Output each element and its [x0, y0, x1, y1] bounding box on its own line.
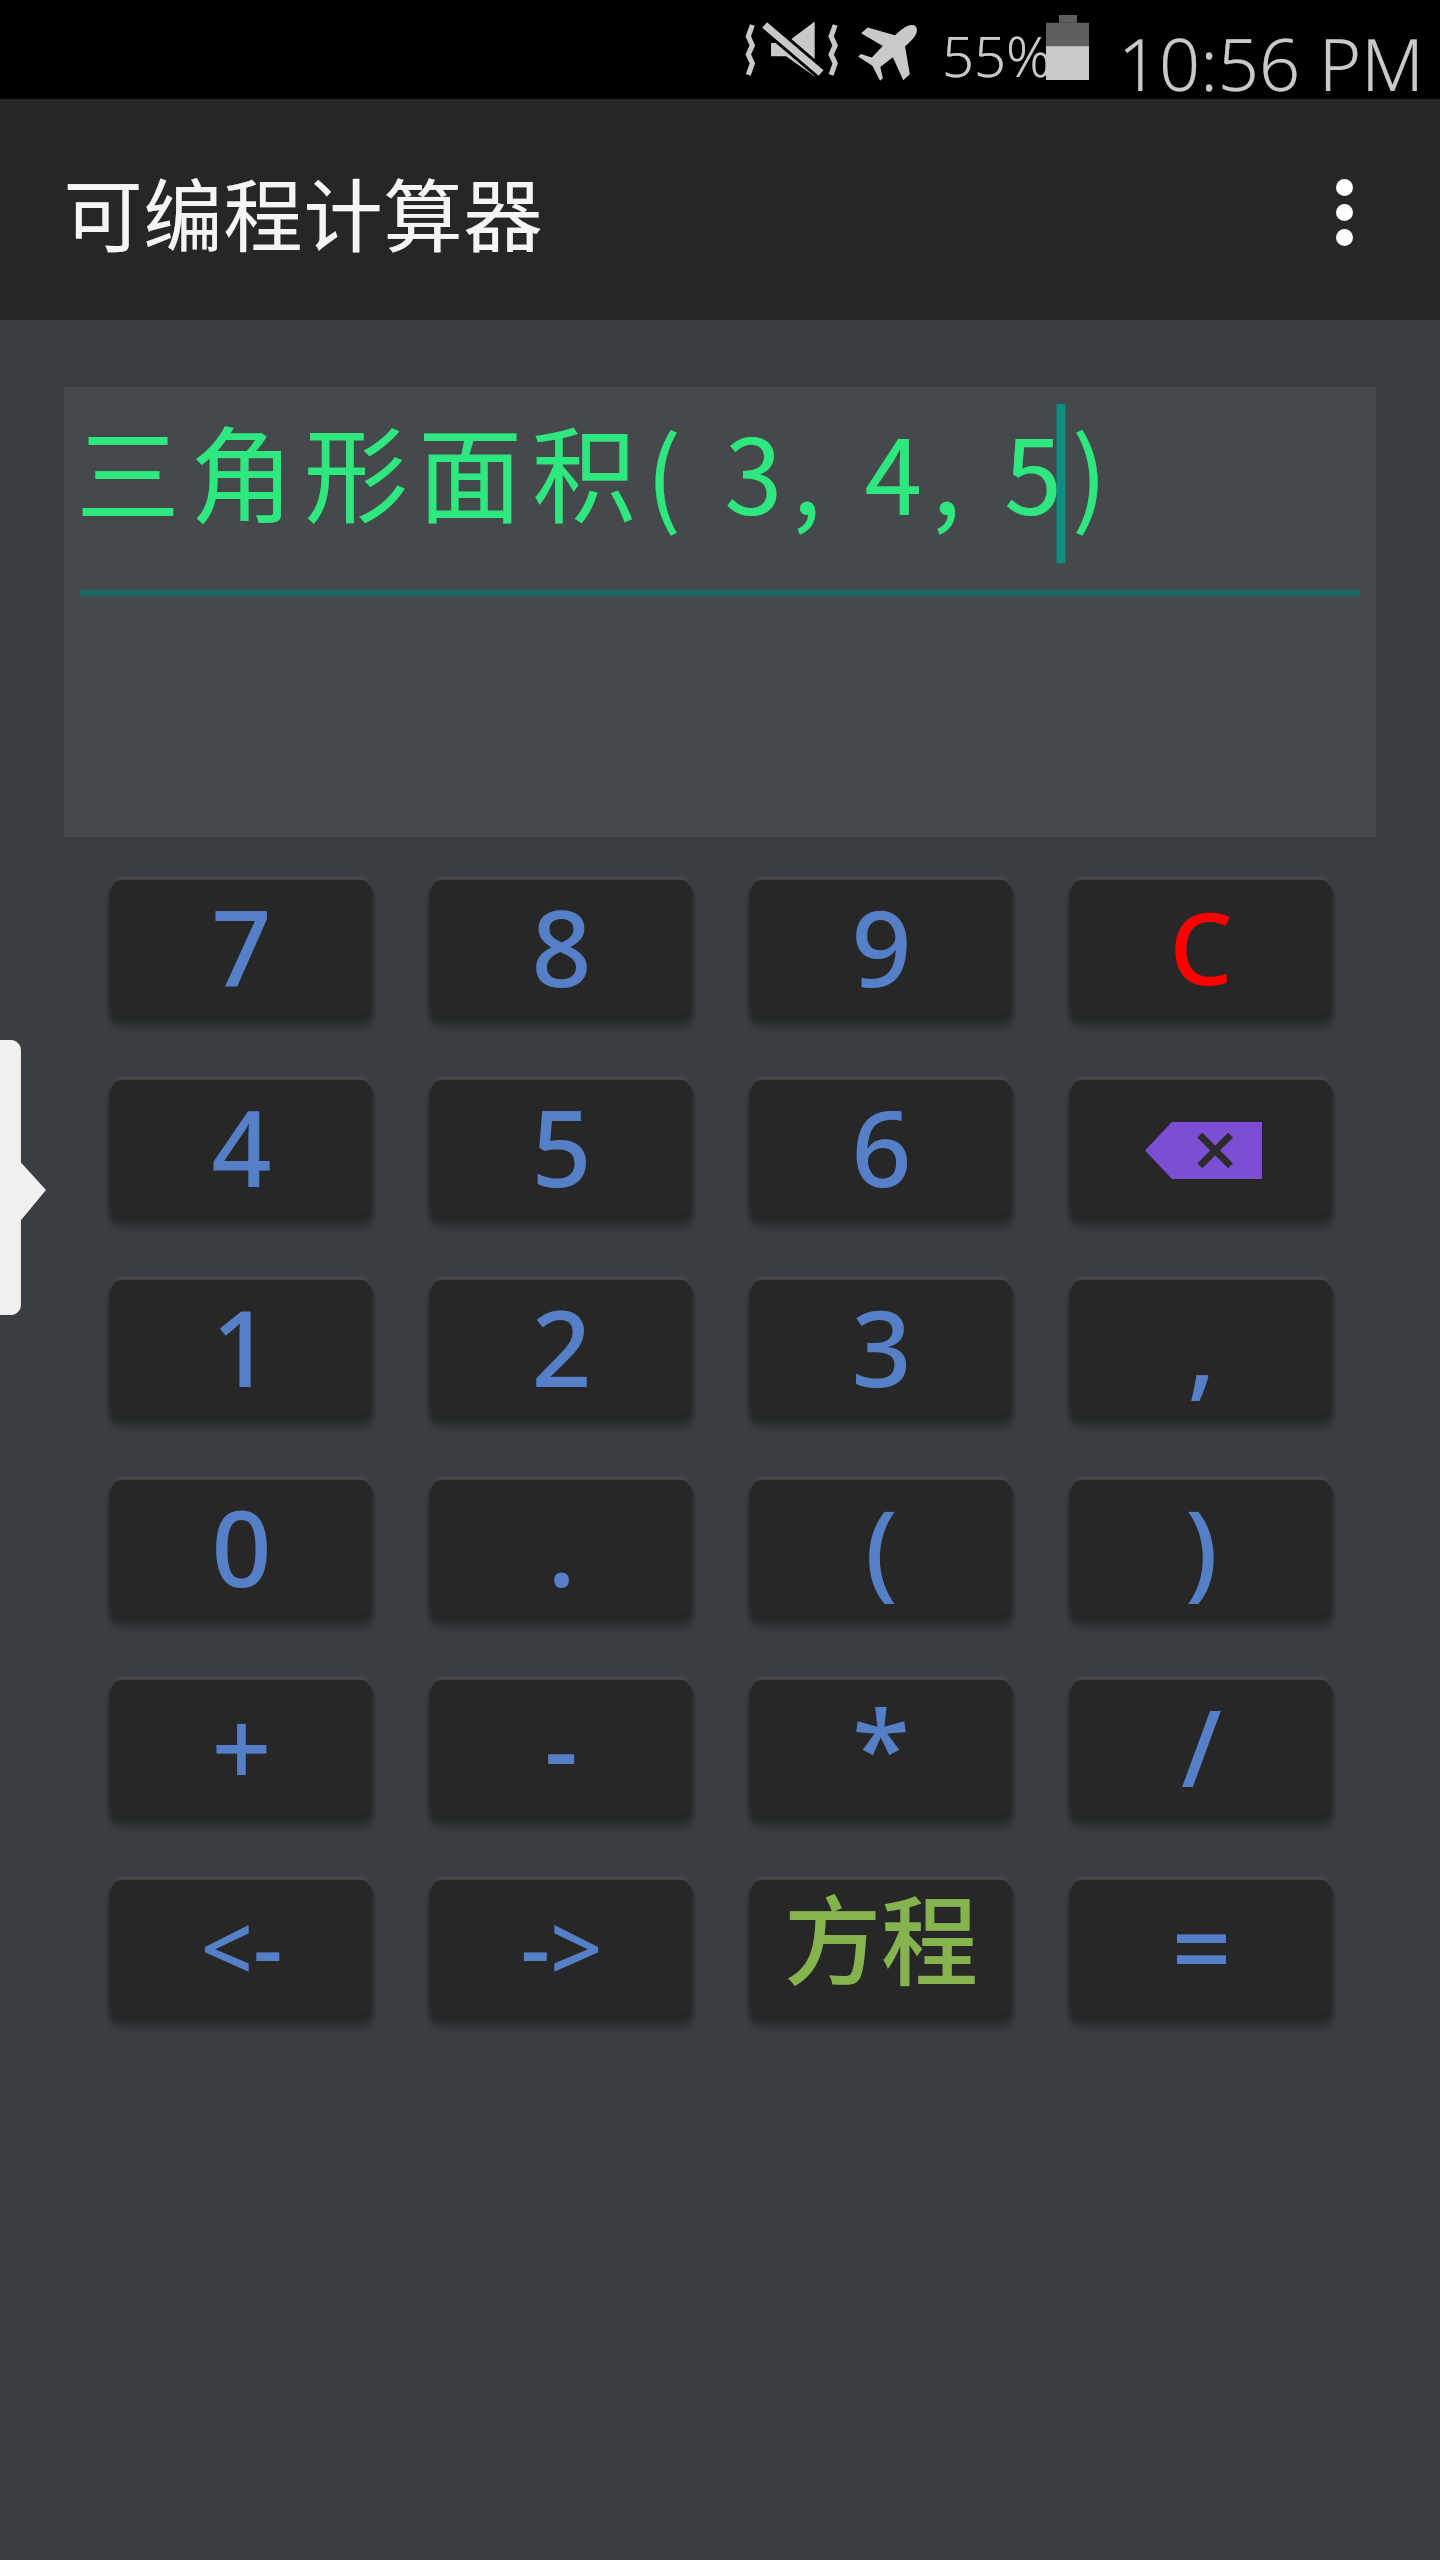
- staticText: 7: [211, 875, 272, 1018]
- staticText: <-: [200, 1884, 283, 2009]
- button[interactable]: 9: [740, 870, 1022, 1030]
- staticText: +: [211, 1675, 272, 1818]
- staticText: ): [1185, 1475, 1218, 1618]
- other: Delete: [1145, 1122, 1262, 1179]
- staticText: 三角形面积( 3, 4, 5): [76, 394, 1118, 545]
- button[interactable]: <-: [100, 1870, 382, 2030]
- staticText: 55%: [942, 17, 1052, 93]
- button[interactable]: /: [1060, 1670, 1342, 1830]
- staticText: 6: [851, 1075, 912, 1218]
- button[interactable]: C: [1060, 870, 1342, 1030]
- button[interactable]: -: [420, 1670, 702, 1830]
- button[interactable]: 8: [420, 870, 702, 1030]
- button[interactable]: =: [1060, 1870, 1342, 2030]
- button[interactable]: 方程: [740, 1870, 1022, 2030]
- staticText: *: [852, 1675, 910, 1818]
- staticText: /: [1181, 1675, 1222, 1818]
- staticText: 8: [531, 875, 592, 1018]
- button[interactable]: 3: [740, 1270, 1022, 1430]
- staticText: ->: [520, 1884, 603, 2009]
- button[interactable]: +: [100, 1670, 382, 1830]
- staticText: 方程: [784, 1864, 978, 2004]
- staticText: 0: [211, 1475, 272, 1618]
- button[interactable]: .: [420, 1470, 702, 1630]
- staticText: 9: [851, 875, 912, 1018]
- button[interactable]: ): [1060, 1470, 1342, 1630]
- button[interactable]: Open drawer: [0, 1040, 46, 1315]
- staticText: (: [865, 1475, 898, 1618]
- button[interactable]: Delete: [1060, 1070, 1342, 1230]
- staticText: -: [544, 1675, 578, 1818]
- button[interactable]: 三角形面积( 3, 4, 5): [64, 387, 1376, 837]
- button[interactable]: (: [740, 1470, 1022, 1630]
- staticText: 1: [211, 1275, 272, 1418]
- button[interactable]: More options: [1284, 150, 1404, 270]
- staticText: 可编程计算器: [63, 154, 543, 268]
- staticText: ,: [1187, 1275, 1216, 1418]
- button[interactable]: ->: [420, 1870, 702, 2030]
- button[interactable]: 0: [100, 1470, 382, 1630]
- staticText: 5: [531, 1075, 592, 1218]
- staticText: =: [1171, 1875, 1232, 2018]
- staticText: C: [1169, 878, 1233, 1014]
- button[interactable]: 1: [100, 1270, 382, 1430]
- staticText: 2: [531, 1275, 592, 1418]
- staticText: 4: [211, 1075, 272, 1218]
- button[interactable]: 2: [420, 1270, 702, 1430]
- button[interactable]: 6: [740, 1070, 1022, 1230]
- button[interactable]: 5: [420, 1070, 702, 1230]
- button[interactable]: 4: [100, 1070, 382, 1230]
- staticText: .: [547, 1475, 576, 1618]
- staticText: 10:56 PM: [1118, 14, 1424, 112]
- staticText: 3: [851, 1275, 912, 1418]
- button[interactable]: *: [740, 1670, 1022, 1830]
- button[interactable]: 7: [100, 870, 382, 1030]
- button[interactable]: ,: [1060, 1270, 1342, 1430]
